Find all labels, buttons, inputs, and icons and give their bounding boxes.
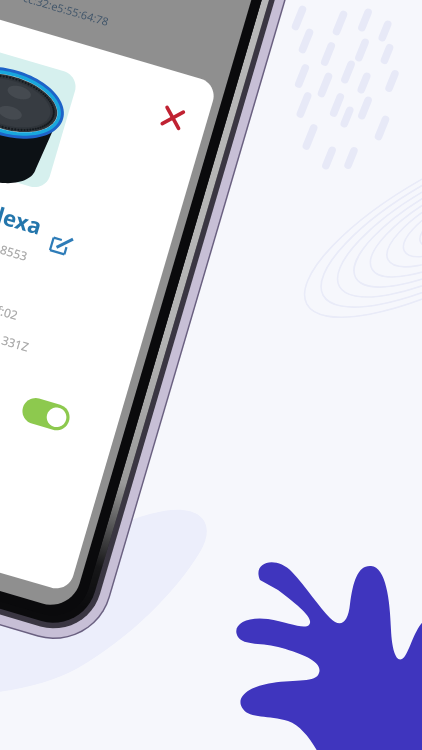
staticText: cc:32:e5:55:64:78 [22, 0, 111, 29]
staticText: cc:32:e5:4d:bf:02 [0, 281, 20, 323]
staticText: 2021-05-02T32.331Z [0, 307, 31, 355]
staticText: Device ID: 8553 [0, 224, 29, 264]
staticText: Alexa [0, 195, 46, 241]
